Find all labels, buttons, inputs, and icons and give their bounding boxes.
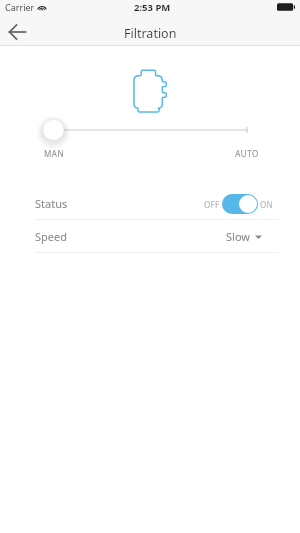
- staticText: Status: [35, 196, 68, 211]
- staticText: 2:53 PM: [134, 1, 171, 14]
- staticText: AUTO: [227, 148, 267, 158]
- button[interactable]: Back: [2, 20, 32, 46]
- staticText: Slow: [226, 229, 250, 244]
- button[interactable]: Mode slider: manual to auto: [0, 118, 300, 142]
- button[interactable]: Status: [0, 187, 300, 220]
- button[interactable]: Status on: [204, 194, 273, 214]
- staticText: Filtration: [124, 25, 177, 42]
- staticText: Speed: [35, 229, 67, 244]
- button[interactable]: Speed: [0, 220, 300, 253]
- staticText: ON: [260, 199, 273, 210]
- button[interactable]: Slow: [226, 229, 262, 244]
- staticText: OFF: [204, 199, 220, 210]
- staticText: Carrier: [5, 1, 35, 13]
- staticText: MAN: [34, 148, 74, 158]
